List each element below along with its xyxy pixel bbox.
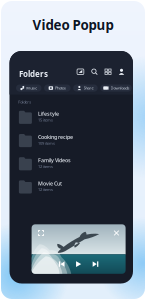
button[interactable]: Downloads [100,84,132,92]
staticText: Downloads [111,85,130,91]
staticText: 12 items [38,187,53,192]
staticText: 109 items [38,140,55,146]
button[interactable]: Cast [77,69,84,75]
button[interactable]: Expand [38,230,44,236]
staticText: Photos [55,85,66,91]
staticText: Lifestyle [38,110,59,117]
button[interactable]: Cooking recipe [9,128,133,151]
staticText: Folders [19,68,48,79]
button[interactable]: Previous [59,261,65,267]
staticText: Video Popup [32,16,113,34]
staticText: Folders [18,99,31,104]
button[interactable]: Close [114,230,119,236]
button[interactable]: Music [16,84,41,92]
button[interactable]: Family Videos [9,151,133,174]
button[interactable]: Movie Cut [9,174,133,198]
button[interactable]: Search [91,68,98,75]
staticText: Movie Cut [38,180,62,187]
staticText: Cooking recipe [38,133,73,140]
button[interactable]: Next [93,261,98,267]
button[interactable]: Gallery [105,69,111,75]
button[interactable]: Photos [44,84,71,92]
staticText: Family Videos [38,157,71,164]
button[interactable]: Share [73,84,98,92]
staticText: 12 items [38,164,53,169]
button[interactable]: Lifestyle [9,105,133,128]
button[interactable]: Play [76,261,81,267]
staticText: Share [84,85,94,91]
staticText: Music [26,85,37,91]
button[interactable]: Account [118,68,125,75]
staticText: 15 items [38,117,53,123]
